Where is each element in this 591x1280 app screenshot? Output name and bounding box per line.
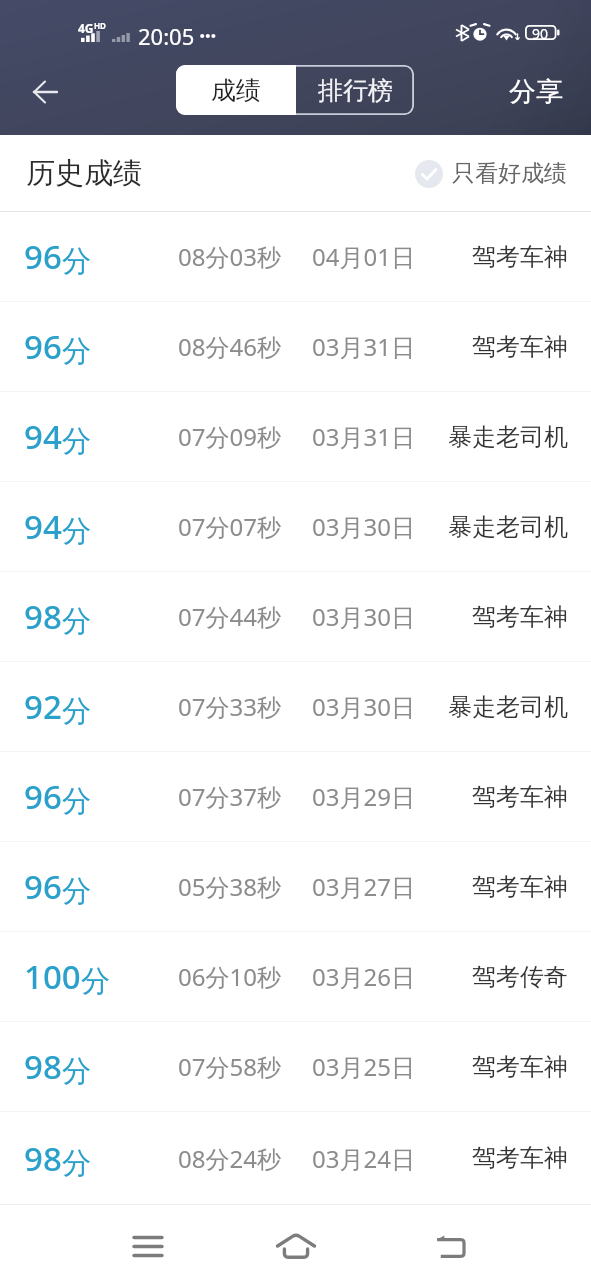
staticText: 暴走老司机 [448, 692, 568, 722]
staticText: 08分03秒 [178, 240, 281, 273]
staticText: 20:05 [138, 21, 195, 51]
staticText: 07分44秒 [178, 600, 281, 633]
staticText: 驾考车神 [472, 332, 568, 362]
button[interactable]: 96 [0, 842, 591, 931]
staticText: 分 [81, 963, 110, 1000]
staticText: 07分33秒 [178, 690, 281, 723]
staticText: 03月30日 [312, 600, 415, 633]
staticText: 分 [62, 873, 91, 910]
staticText: 驾考车神 [472, 872, 568, 902]
staticText: 98 [24, 594, 62, 639]
staticText: 分 [62, 693, 91, 730]
staticText: 98 [24, 1136, 62, 1181]
button[interactable]: 100 [0, 932, 591, 1021]
button[interactable]: 98 [0, 572, 591, 661]
staticText: 暴走老司机 [448, 422, 568, 452]
staticText: 94 [24, 504, 62, 549]
staticText: 07分37秒 [178, 780, 281, 813]
staticText: 04月01日 [312, 240, 415, 273]
staticText: 06分10秒 [178, 960, 281, 993]
button[interactable]: 98 [0, 1022, 591, 1111]
staticText: 排行榜 [318, 75, 393, 106]
button[interactable]: 成绩 [176, 65, 296, 115]
staticText: 03月31日 [312, 420, 415, 453]
button[interactable]: 96 [0, 212, 591, 301]
button[interactable]: 94 [0, 482, 591, 571]
button[interactable]: 排行榜 [296, 65, 414, 115]
button[interactable]: 96 [0, 752, 591, 841]
staticText: 分 [62, 1053, 91, 1090]
staticText: 分 [62, 333, 91, 370]
staticText: 96 [24, 864, 62, 909]
staticText: 03月26日 [312, 960, 415, 993]
staticText: 分 [62, 423, 91, 460]
staticText: 07分07秒 [178, 510, 281, 543]
button[interactable]: 只看好成绩 [415, 159, 567, 188]
staticText: 08分46秒 [178, 330, 281, 363]
staticText: 96 [24, 234, 62, 279]
staticText: 98 [24, 1044, 62, 1089]
staticText: 03月30日 [312, 690, 415, 723]
button[interactable]: Recent apps [98, 1211, 198, 1280]
staticText: 03月30日 [312, 510, 415, 543]
button[interactable]: 94 [0, 392, 591, 481]
staticText: 分享 [509, 75, 563, 109]
staticText: 分 [62, 513, 91, 550]
staticText: HD [94, 20, 106, 31]
staticText: 分 [62, 243, 91, 280]
staticText: 03月27日 [312, 870, 415, 903]
staticText: 只看好成绩 [452, 159, 567, 188]
staticText: 03月31日 [312, 330, 415, 363]
staticText: 07分09秒 [178, 420, 281, 453]
staticText: 驾考传奇 [472, 962, 568, 992]
staticText: 07分58秒 [178, 1050, 281, 1083]
staticText: 成绩 [211, 75, 261, 106]
button[interactable]: Back [12, 67, 77, 117]
staticText: 100 [24, 954, 81, 999]
staticText: 历史成绩 [26, 155, 142, 192]
staticText: 分 [62, 1145, 91, 1182]
staticText: 驾考车神 [472, 782, 568, 812]
staticText: 分 [62, 603, 91, 640]
staticText: 96 [24, 774, 62, 819]
staticText: 03月24日 [312, 1142, 415, 1175]
staticText: 驾考车神 [472, 242, 568, 272]
staticText: 驾考车神 [472, 602, 568, 632]
button[interactable]: Back [400, 1211, 500, 1280]
staticText: 90 [532, 24, 549, 39]
button[interactable]: 96 [0, 302, 591, 391]
button[interactable]: 92 [0, 662, 591, 751]
staticText: 08分24秒 [178, 1142, 281, 1175]
staticText: 驾考车神 [472, 1052, 568, 1082]
button[interactable]: Home [246, 1211, 346, 1280]
staticText: 驾考车神 [472, 1143, 568, 1173]
staticText: 分 [62, 783, 91, 820]
staticText: 96 [24, 324, 62, 369]
staticText: 03月29日 [312, 780, 415, 813]
staticText: 94 [24, 414, 62, 459]
button[interactable]: 分享 [494, 67, 578, 117]
staticText: 05分38秒 [178, 870, 281, 903]
button[interactable]: 98 [0, 1112, 591, 1204]
staticText: 92 [24, 684, 62, 729]
staticText: 03月25日 [312, 1050, 415, 1083]
staticText: 暴走老司机 [448, 512, 568, 542]
staticText: 4G [78, 20, 94, 36]
